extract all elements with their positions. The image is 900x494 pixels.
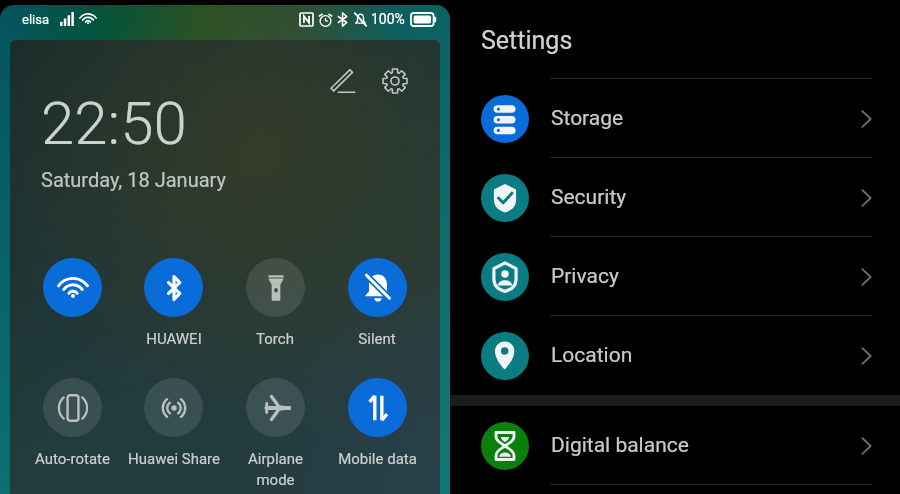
button[interactable]: Silent [326,258,428,348]
staticText: Security [551,185,627,210]
button[interactable]: Auto-rotate [22,378,123,468]
button[interactable]: Security [450,158,900,237]
button[interactable]: HUAWEI [123,258,224,348]
staticText: Silent [358,330,396,348]
button[interactable]: Huawei Share [123,378,224,468]
staticText: Privacy [551,264,619,289]
staticText: Torch [256,330,294,348]
button[interactable]: Digital balance [450,406,900,485]
staticText: 22:50 [41,88,187,158]
staticText: Storage [551,106,624,131]
staticText: Huawei Share [128,450,220,468]
staticText: Auto-rotate [35,450,110,468]
staticText: HUAWEI [146,330,202,348]
button[interactable]: Location [450,316,900,395]
staticText: Settings [481,26,573,55]
button[interactable]: Torch [224,258,326,348]
staticText: Saturday, 18 January [41,168,226,191]
staticText: Airplane mode [248,450,303,488]
staticText: elisa [22,12,49,27]
staticText: Mobile data [338,450,417,468]
button[interactable]: Privacy [450,237,900,316]
button[interactable]: Settings [377,63,413,99]
staticText: 100% [371,11,405,27]
button[interactable]: Mobile data [326,378,428,468]
button[interactable]: Edit quick settings [324,63,360,99]
button[interactable] [22,258,123,330]
button[interactable]: Airplane mode [224,378,326,488]
staticText: Digital balance [551,433,689,458]
staticText: Location [551,343,633,368]
button[interactable]: Storage [450,79,900,158]
